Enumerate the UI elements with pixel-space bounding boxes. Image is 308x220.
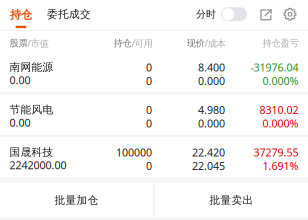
staticText: 0.000 [198, 73, 225, 88]
staticText: 股票 [9, 37, 27, 49]
staticText: 22.045 [192, 158, 225, 173]
staticText: 委托成交 [47, 7, 91, 21]
staticText: 22.420 [192, 145, 225, 159]
button[interactable]: 持仓 [5, 7, 37, 31]
staticText: 持仓 [10, 8, 32, 22]
staticText: 37279.55 [253, 145, 298, 159]
staticText: 节能风电 [9, 103, 53, 116]
staticText: 0.000% [262, 116, 298, 130]
staticText: 持仓盈亏 [262, 37, 298, 49]
staticText: 8310.02 [259, 102, 298, 117]
staticText: 批量加仓 [54, 193, 98, 207]
staticText: 1.691% [262, 158, 298, 173]
staticText: 持仓 [113, 37, 131, 49]
staticText: /成本 [204, 37, 225, 50]
staticText: 0 [146, 73, 152, 88]
button[interactable]: 南网能源 [0, 52, 308, 92]
staticText: 2242000.00 [9, 158, 66, 172]
button[interactable]: Settings [283, 7, 297, 21]
staticText: 0 [146, 116, 152, 130]
staticText: 国晟科技 [9, 145, 53, 159]
staticText: 0.000% [262, 73, 298, 88]
staticText: 100000 [116, 145, 152, 159]
staticText: 0 [146, 60, 152, 74]
staticText: 8.400 [198, 60, 225, 74]
staticText: /可用 [131, 37, 152, 50]
staticText: 分时 [196, 8, 216, 21]
staticText: 0.00 [9, 73, 30, 87]
staticText: 4.980 [198, 102, 225, 117]
staticText: 0 [146, 158, 152, 173]
button[interactable]: 批量加仓 [0, 183, 153, 217]
staticText: -31976.04 [250, 60, 298, 74]
staticText: 0.000 [198, 116, 225, 130]
staticText: 南网能源 [9, 60, 53, 74]
staticText: 0 [146, 102, 152, 117]
staticText: 0.00 [9, 115, 30, 130]
button[interactable]: 批量卖出 [155, 183, 308, 217]
button[interactable]: 委托成交 [44, 6, 93, 22]
button[interactable]: 国晟科技 [0, 137, 308, 177]
button[interactable]: 分时 [221, 7, 247, 21]
button[interactable]: Share [259, 8, 273, 22]
staticText: /市值 [27, 37, 48, 50]
staticText: 批量卖出 [209, 193, 253, 207]
staticText: 现价 [186, 37, 204, 49]
button[interactable]: 节能风电 [0, 94, 308, 135]
